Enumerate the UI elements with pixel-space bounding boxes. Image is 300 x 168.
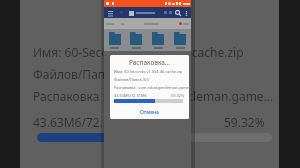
button[interactable]: Отмена [110,106,189,118]
staticText: Файлов/Папок 3/3 [114,77,149,82]
staticText: Распаковка... [110,58,189,67]
staticText: Файлов/Папок 3/3 [33,66,140,82]
button[interactable]: Menu [106,9,114,17]
staticText: 59.32% [171,93,185,98]
staticText: 59.32% [224,114,265,130]
staticText: 43.63M6/72.51M6 [33,114,135,130]
staticText: Распаковка : com.robotgentleman.game... [33,88,274,104]
staticText: Имя: 60-Seconds-v1-054-46-cache.zip [33,44,244,60]
staticText: 43.63M6/72.51M6 [114,93,147,98]
button[interactable] [125,29,147,49]
button[interactable] [147,29,169,49]
staticText: Распаковка : com.robotgentleman.game... [114,85,189,90]
button[interactable] [169,29,191,49]
button[interactable] [104,29,125,49]
button[interactable]: Search [174,9,182,17]
staticText: Имя: 60-Seconds-v1-054-46-cache.zip [114,69,183,74]
staticText: Отмена [140,109,159,116]
button[interactable] [129,10,155,16]
button[interactable]: More options [182,9,190,17]
